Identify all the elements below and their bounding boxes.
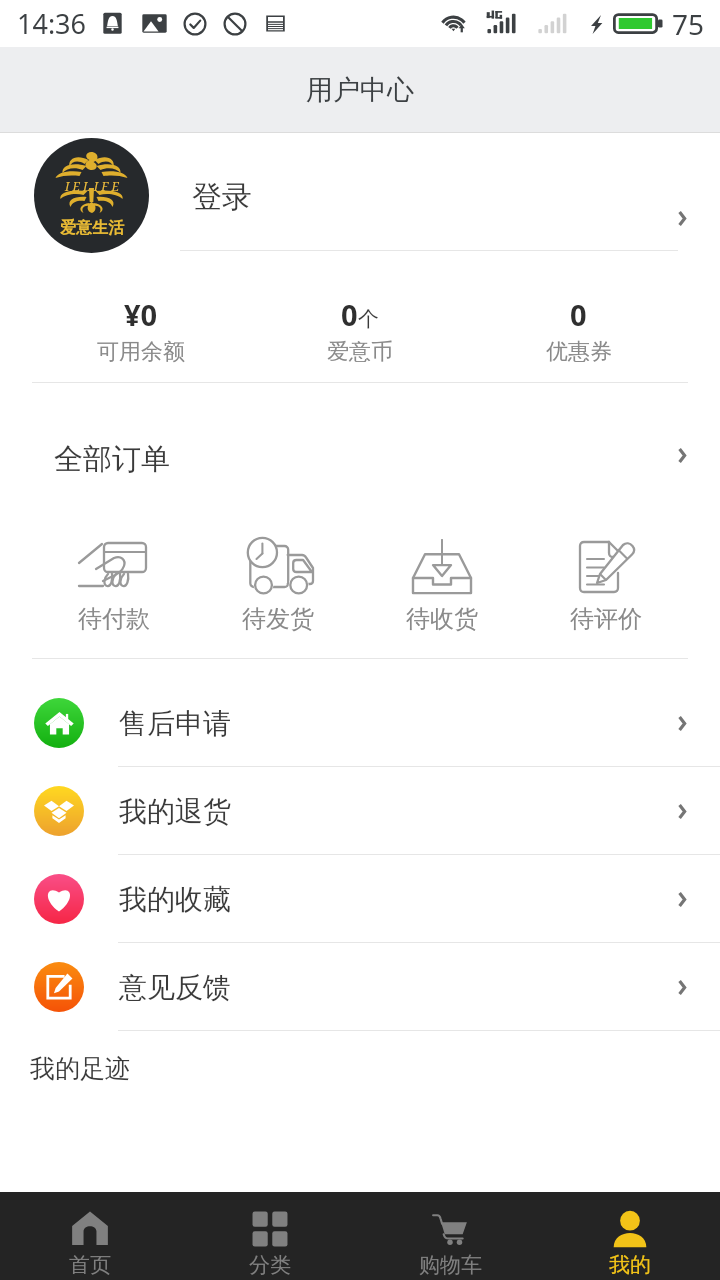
other: 全部订单	[676, 447, 688, 464]
staticText: 待发货	[242, 604, 314, 634]
button[interactable]: 0	[469, 255, 688, 382]
staticText: 可用余额	[97, 338, 185, 366]
staticText: 0	[570, 295, 587, 334]
other: 登录	[676, 210, 688, 227]
staticText: 我的收藏	[119, 882, 231, 917]
staticText: ¥0	[124, 295, 158, 334]
staticText: 我的足迹	[30, 1053, 130, 1084]
staticText: 首页	[69, 1252, 111, 1278]
button[interactable]: 我的收藏	[0, 855, 720, 943]
button[interactable]: 我的退货	[0, 767, 720, 855]
staticText: 个	[358, 306, 379, 332]
staticText: 爱意生活	[60, 218, 124, 238]
staticText: 优惠券	[546, 338, 612, 366]
button[interactable]: 待付款	[32, 530, 196, 658]
button[interactable]: 全部订单	[0, 383, 720, 530]
staticText: 14:36	[17, 5, 87, 42]
staticText: 分类	[249, 1252, 291, 1278]
staticText: 用户中心	[306, 73, 414, 107]
staticText: 意见反馈	[119, 970, 231, 1005]
button[interactable]: 分类	[180, 1192, 360, 1280]
staticText: 0	[341, 295, 358, 334]
other: 我的收藏	[676, 891, 688, 908]
button[interactable]: 0	[250, 255, 469, 382]
staticText: 售后申请	[119, 706, 231, 741]
button[interactable]: 我的	[540, 1192, 720, 1280]
staticText: 全部订单	[54, 441, 170, 478]
other: 售后申请	[676, 715, 688, 732]
button[interactable]: 待评价	[524, 530, 688, 658]
staticText: 购物车	[419, 1252, 482, 1278]
button[interactable]: 待发货	[196, 530, 360, 658]
button[interactable]: 我的足迹	[0, 1031, 720, 1087]
staticText: 爱意币	[327, 338, 393, 366]
button[interactable]: 首页	[0, 1192, 180, 1280]
staticText: 登录	[192, 178, 252, 216]
staticText: 待付款	[78, 604, 150, 634]
button[interactable]: 售后申请	[0, 679, 720, 767]
other: 我的退货	[676, 803, 688, 820]
button[interactable]: 待收货	[360, 530, 524, 658]
other: 意见反馈	[676, 979, 688, 996]
button[interactable]: 购物车	[360, 1192, 540, 1280]
staticText: 我的	[609, 1252, 651, 1278]
button[interactable]: 意见反馈	[0, 943, 720, 1031]
staticText: 待收货	[406, 604, 478, 634]
button[interactable]: I E L I F E	[0, 133, 720, 255]
staticText: 我的退货	[119, 794, 231, 829]
button[interactable]: ¥0	[32, 255, 250, 382]
staticText: I E L I F E	[65, 178, 119, 194]
staticText: 75	[672, 5, 705, 43]
staticText: 待评价	[570, 604, 642, 634]
